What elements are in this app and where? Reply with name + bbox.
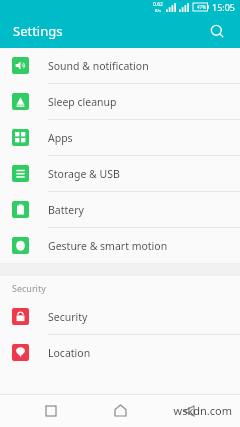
staticText: Gesture & smart motion [48,239,168,253]
staticText: 47% [197,4,206,10]
button[interactable]: Gesture & smart motion [0,228,240,263]
button[interactable]: Sound & notification [0,48,240,83]
button[interactable]: Home [102,394,138,427]
button[interactable]: Back [171,394,207,427]
staticText: Security [12,282,46,294]
button[interactable]: Sleep cleanup [0,84,240,119]
button[interactable]: Search [204,18,230,44]
staticText: Location [48,346,91,360]
staticText: Storage & USB [48,167,120,181]
button[interactable]: Security [0,299,240,334]
staticText: K/s [155,8,161,13]
staticText: Settings [13,22,63,40]
button[interactable]: Apps [0,120,240,155]
staticText: Apps [48,131,73,145]
staticText: 15:05 [212,1,236,13]
staticText: wskdn.com [173,403,232,418]
staticText: Sleep cleanup [48,95,117,109]
staticText: Sound & notification [48,59,149,73]
staticText: Security [48,310,88,324]
staticText: 0.62 [153,1,163,8]
button[interactable]: Storage & USB [0,156,240,191]
button[interactable]: Recents [33,394,69,427]
staticText: Battery [48,203,84,217]
button[interactable]: Location [0,335,240,370]
button[interactable]: Battery [0,192,240,227]
